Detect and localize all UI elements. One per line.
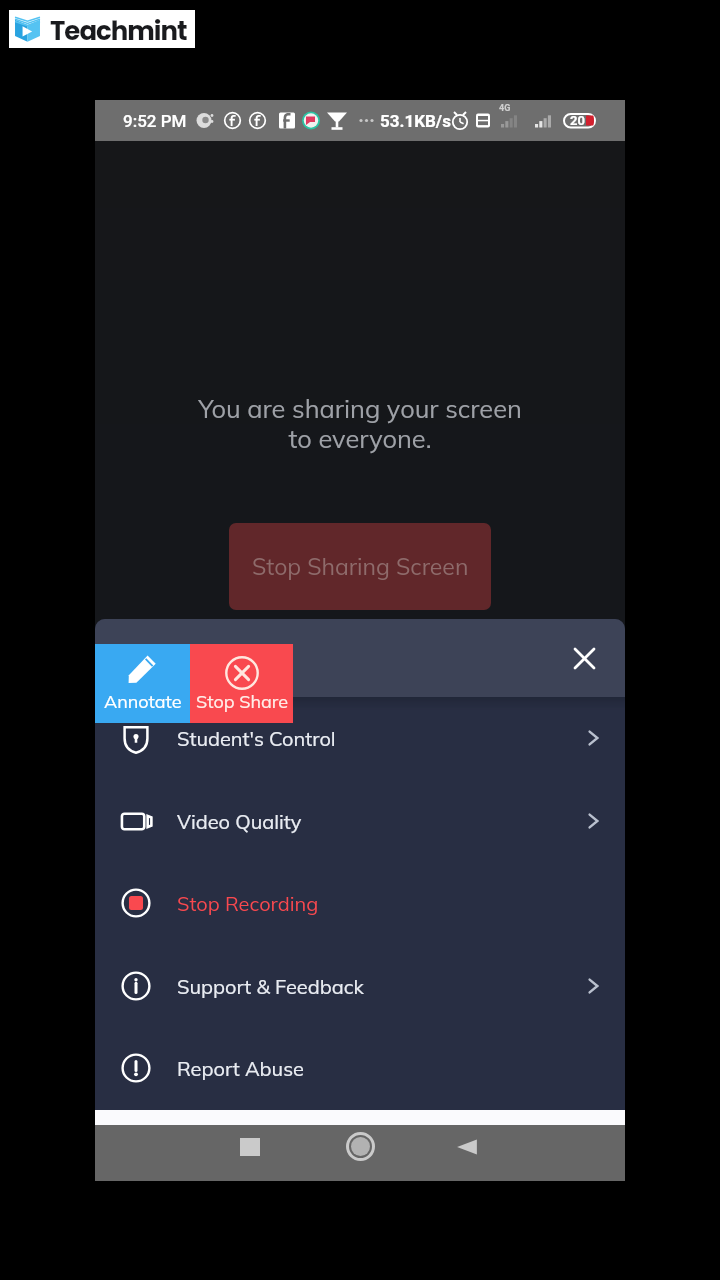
staticText: 20 (570, 113, 585, 128)
staticText: Stop Share (196, 690, 288, 713)
button[interactable]: Stop Recording (95, 862, 625, 944)
staticText: Report Abuse (177, 1056, 304, 1081)
staticText: Video Quality (177, 809, 302, 834)
button[interactable]: Home (321, 1125, 399, 1168)
button[interactable]: Recents (211, 1125, 289, 1168)
staticText: Stop Recording (177, 891, 319, 916)
button[interactable]: Student's Control (95, 697, 625, 779)
staticText: Support & Feedback (177, 974, 364, 999)
staticText: 53.1KB/s (380, 111, 451, 131)
staticText: 4G (499, 103, 511, 114)
staticText: You are sharing your screen to everyone. (198, 392, 522, 454)
button[interactable] (190, 644, 293, 723)
button[interactable]: Support & Feedback (95, 945, 625, 1027)
staticText: Student's Control (177, 726, 336, 751)
button[interactable]: Back (428, 1125, 506, 1168)
button[interactable]: Report Abuse (95, 1027, 625, 1109)
button[interactable]: Stop Sharing Screen (229, 523, 491, 610)
button[interactable] (95, 644, 190, 723)
staticText: 9:52 PM (123, 111, 187, 131)
staticText: Teachmint (50, 13, 187, 49)
staticText: Stop Sharing Screen (252, 552, 469, 581)
button[interactable]: Video Quality (95, 780, 625, 862)
staticText: Annotate (104, 690, 182, 713)
button[interactable]: Close (563, 637, 605, 679)
